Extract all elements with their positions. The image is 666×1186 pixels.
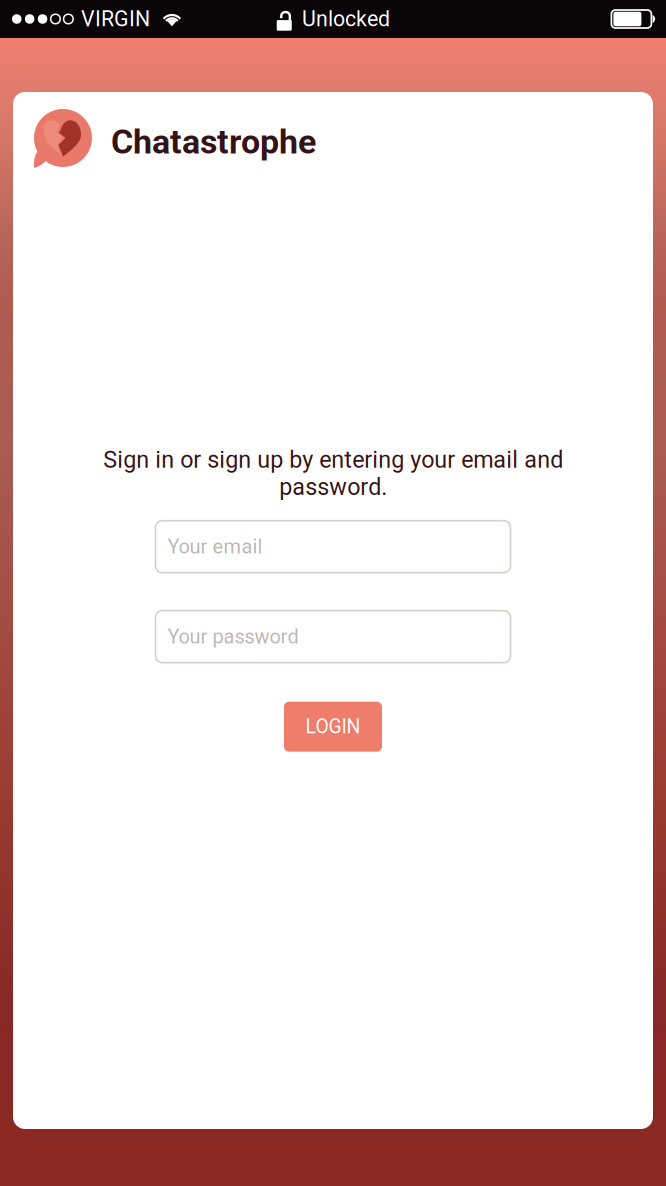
staticText: LOGIN: [305, 715, 360, 738]
button[interactable]: LOGIN: [284, 702, 382, 752]
button[interactable]: Your email: [155, 521, 510, 573]
staticText: VIRGIN: [81, 6, 150, 31]
staticText: Your email: [167, 535, 262, 558]
staticText: Sign in or sign up by entering your emai…: [103, 446, 563, 501]
button[interactable]: Your password: [155, 611, 510, 663]
staticText: Chatastrophe: [111, 122, 316, 162]
staticText: Unlocked: [302, 6, 390, 31]
staticText: Your password: [167, 625, 298, 648]
